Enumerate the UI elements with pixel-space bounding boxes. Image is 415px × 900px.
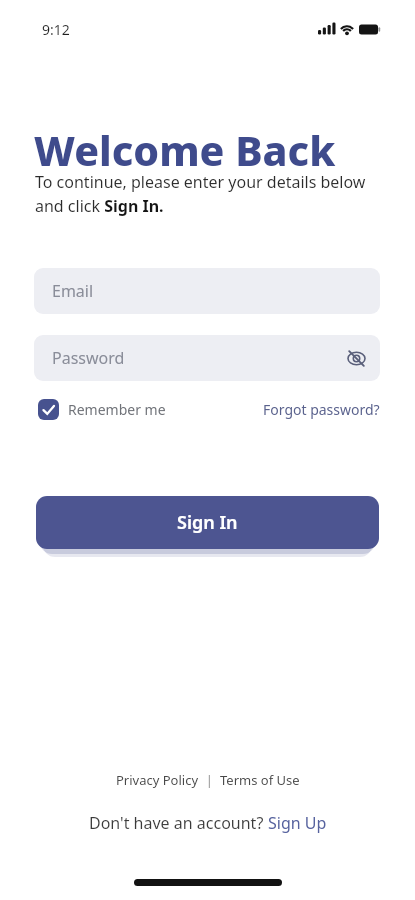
button[interactable]: Password xyxy=(34,335,380,381)
staticText: Don't have an account? xyxy=(89,812,268,834)
button[interactable]: Privacy Policy xyxy=(116,771,300,789)
staticText: Password xyxy=(52,347,125,369)
staticText: | xyxy=(199,771,220,789)
staticText: 9:12 xyxy=(42,20,70,39)
button[interactable]: Forgot password? xyxy=(263,400,380,419)
staticText: Welcome Back xyxy=(34,122,336,178)
button[interactable]: Email xyxy=(34,268,380,314)
staticText: Terms of Use xyxy=(220,771,300,789)
staticText: Sign In xyxy=(177,510,238,535)
staticText: Email xyxy=(52,280,94,302)
staticText: To continue, please enter your details b… xyxy=(35,171,366,217)
button[interactable]: Sign In xyxy=(36,496,379,549)
staticText: Remember me xyxy=(68,400,166,419)
button[interactable]: Don't have an account? xyxy=(89,812,327,834)
staticText: Privacy Policy xyxy=(116,771,199,789)
staticText: Sign Up xyxy=(268,812,327,834)
button[interactable]: Remember me xyxy=(38,399,166,420)
